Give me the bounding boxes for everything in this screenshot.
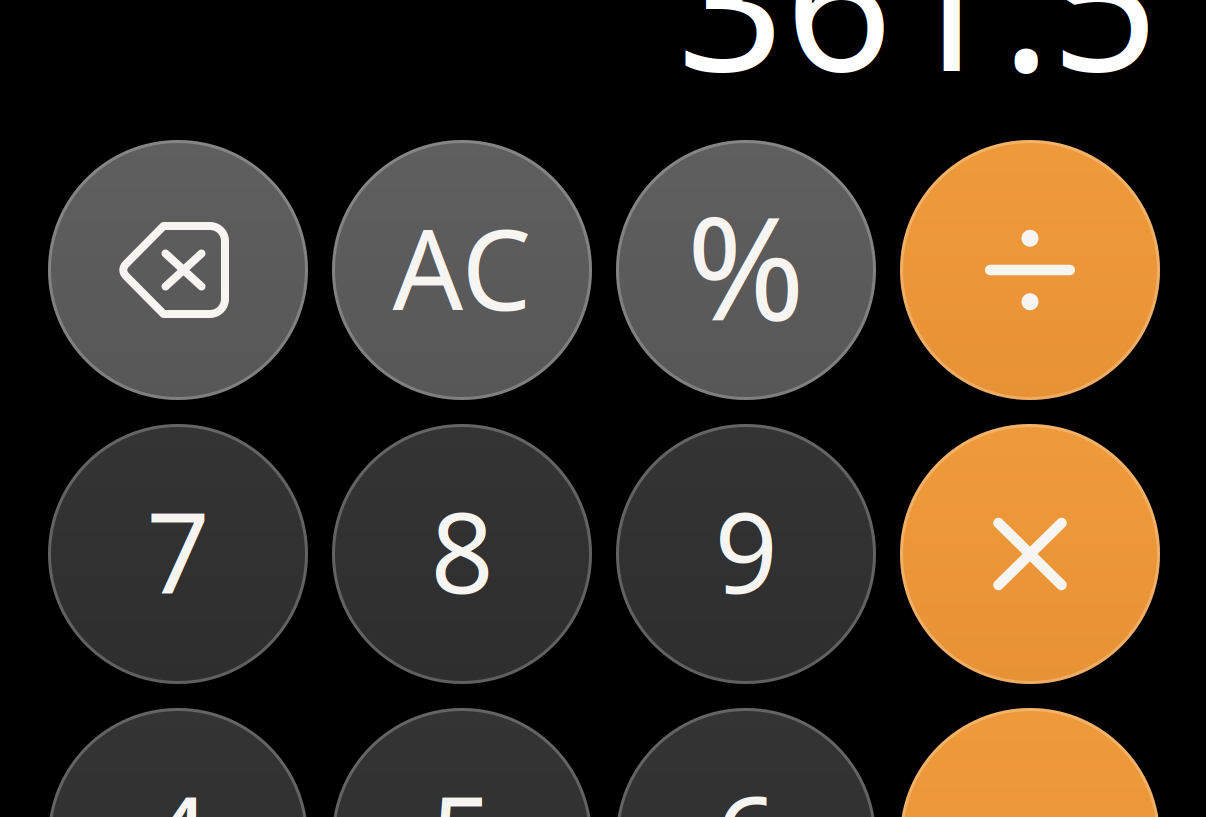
button[interactable]: Multiply [900, 424, 1160, 684]
button[interactable]: AC [332, 140, 592, 400]
button[interactable]: Divide [900, 140, 1160, 400]
button[interactable]: % [616, 140, 876, 400]
button[interactable]: 4 [48, 708, 308, 817]
staticText: % [686, 171, 805, 360]
staticText: 7 [146, 477, 209, 624]
staticText: AC [392, 194, 531, 341]
staticText: 5 [430, 761, 493, 817]
button[interactable]: 7 [48, 424, 308, 684]
button[interactable]: 5 [332, 708, 592, 817]
button[interactable]: Delete [48, 140, 308, 400]
button[interactable]: 8 [332, 424, 592, 684]
staticText: 4 [146, 761, 209, 817]
staticText: 361.5 [677, 0, 1159, 123]
button[interactable]: Subtract [900, 708, 1160, 817]
button[interactable]: 9 [616, 424, 876, 684]
staticText: 9 [714, 477, 777, 624]
staticText: 8 [430, 477, 493, 624]
staticText: 6 [714, 761, 777, 817]
button[interactable]: 6 [616, 708, 876, 817]
